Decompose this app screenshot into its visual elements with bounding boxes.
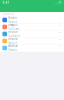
button[interactable]: Invoice	[0, 38, 64, 45]
staticText: 8:02	[59, 25, 62, 26]
staticText: Archive	[8, 44, 18, 48]
staticText: ....lll	[55, 1, 62, 4]
staticText: Shared	[8, 20, 17, 24]
button[interactable]: Images	[0, 24, 64, 31]
staticText: Images	[8, 23, 17, 27]
staticText: Synced	[8, 41, 17, 45]
staticText: Sun	[59, 39, 62, 40]
staticText: Mon	[59, 32, 62, 33]
staticText: Fri	[60, 46, 62, 47]
button[interactable]: Report	[0, 31, 64, 38]
staticText: Backup	[8, 48, 17, 52]
button[interactable]: Archive	[0, 45, 64, 52]
staticText: Recents	[2, 12, 13, 16]
staticText: 9:41	[59, 18, 62, 19]
staticText: 9:41	[2, 1, 9, 4]
staticText: Uploads	[8, 27, 19, 31]
button[interactable]: Folder	[0, 17, 64, 24]
staticText: Folder	[8, 16, 17, 20]
staticText: Report	[8, 30, 18, 34]
staticText: Invoice	[8, 37, 18, 41]
staticText: Updated	[8, 34, 20, 38]
